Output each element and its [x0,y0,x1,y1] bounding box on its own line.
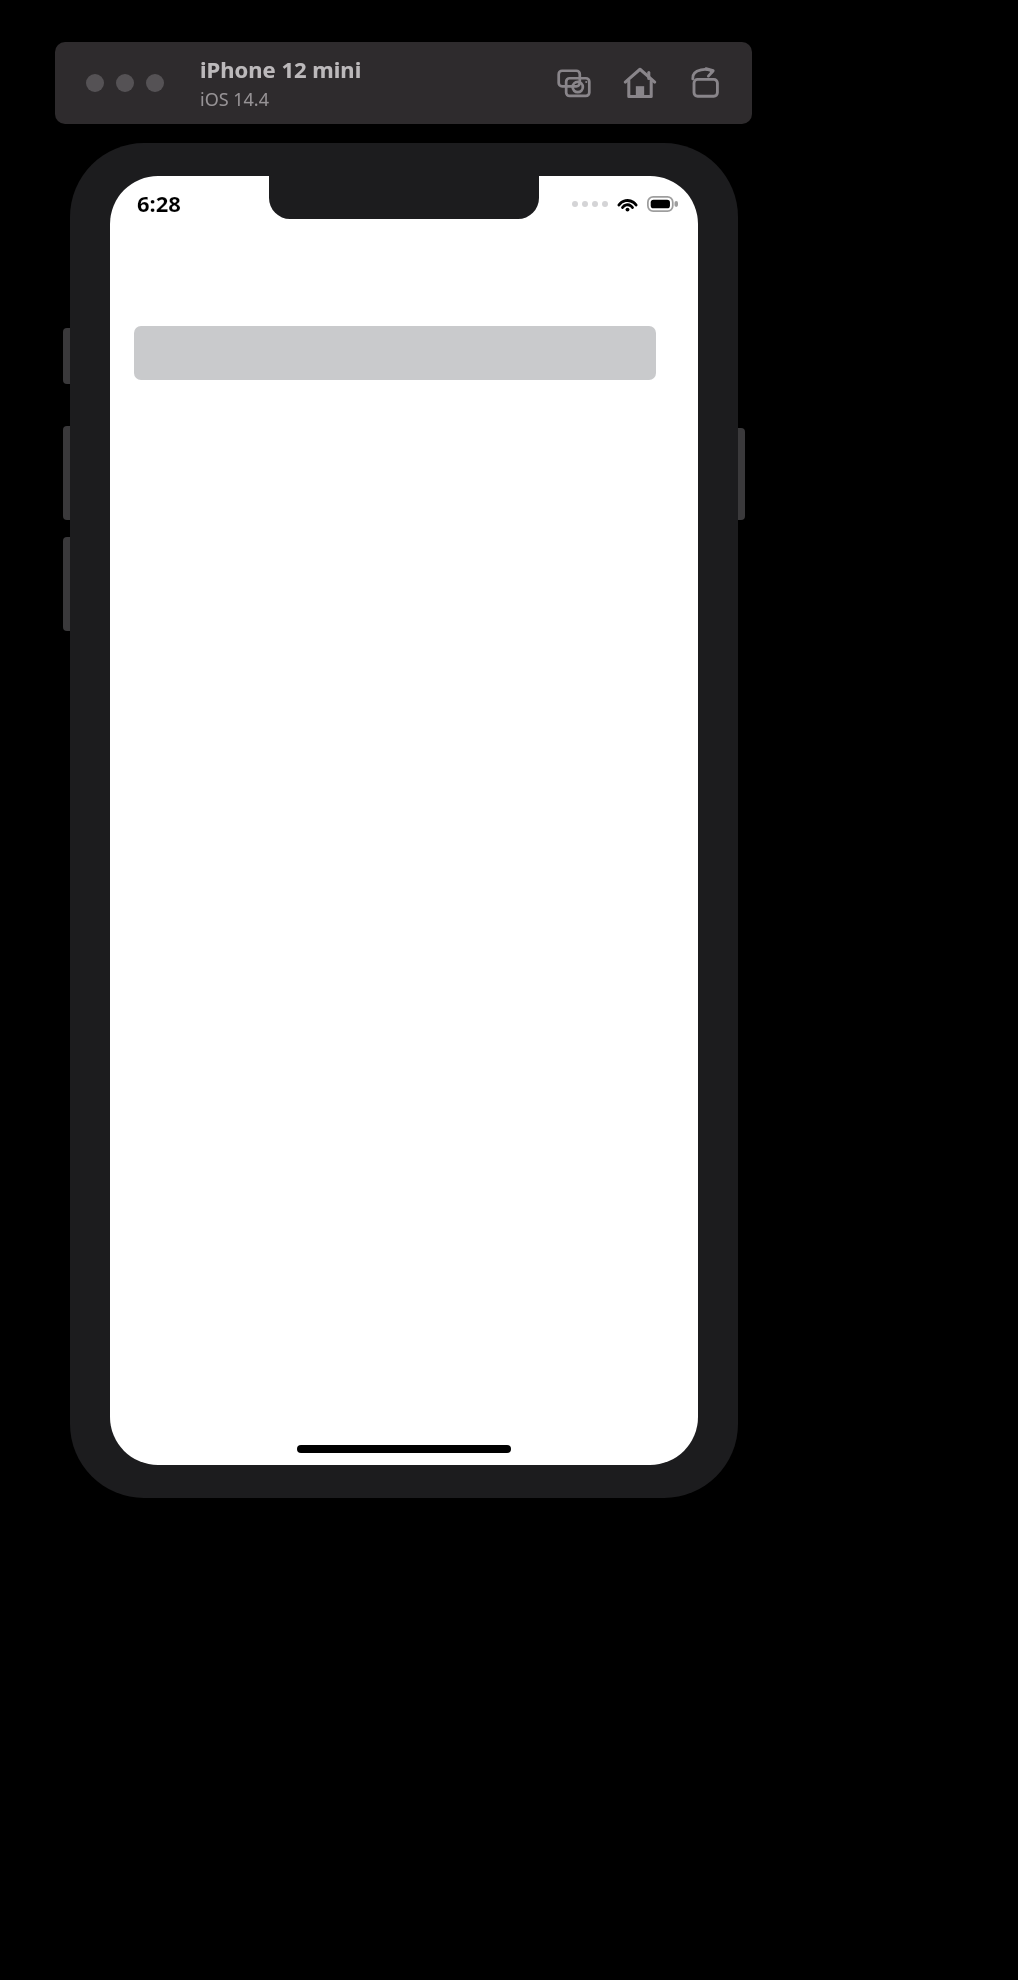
button[interactable]: Window control [86,74,104,92]
button[interactable]: Take screenshot [552,61,596,105]
button[interactable]: Window control [146,74,164,92]
staticText: 6:28 [137,188,181,218]
button[interactable]: Home [618,61,662,105]
button[interactable]: Rotate [684,61,728,105]
button[interactable]: Window control [116,74,134,92]
staticText: iPhone 12 mini [200,54,362,84]
staticText: iOS 14.4 [200,87,269,112]
